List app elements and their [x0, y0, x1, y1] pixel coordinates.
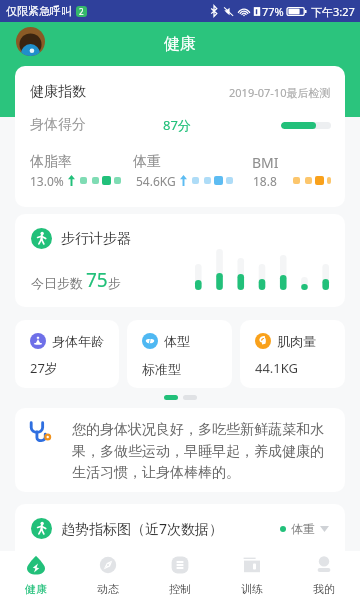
staticText: 77%	[262, 4, 284, 19]
staticText: 体脂率	[30, 153, 72, 171]
staticText: 2019-07-10最后检测	[229, 85, 331, 100]
staticText: 步	[108, 275, 121, 291]
staticText: 体重	[291, 521, 315, 536]
button[interactable]: 训练	[216, 551, 288, 600]
button[interactable]: Profile	[16, 27, 45, 56]
staticText: 健康	[25, 582, 47, 596]
button[interactable]: 健康指数	[15, 66, 345, 207]
staticText: 下午3:27	[311, 4, 355, 19]
button[interactable]: 肌肉量	[240, 320, 345, 388]
staticText: 身体得分	[30, 116, 86, 134]
staticText: 44.1KG	[255, 359, 299, 377]
staticText: 肌肉量	[277, 333, 316, 349]
staticText: 今日步数	[31, 275, 83, 291]
staticText: 训练	[241, 582, 263, 596]
staticText: 趋势指标图（近7次数据）	[61, 519, 224, 538]
staticText: 我的	[313, 582, 335, 596]
button[interactable]: 动态	[72, 551, 144, 600]
staticText: 2	[79, 6, 84, 17]
button[interactable]: 趋势指标图（近7次数据）	[15, 504, 345, 551]
staticText: BMI	[252, 153, 279, 171]
staticText: 54.6KG	[136, 173, 176, 188]
button[interactable]: 身体年龄	[15, 320, 119, 388]
staticText: 您的身体状况良好，多吃些新鲜蔬菜和水果，多做些运动，早睡早起，养成健康的生活习惯…	[72, 421, 330, 481]
staticText: 控制	[169, 582, 191, 596]
staticText: 27岁	[30, 359, 58, 377]
button[interactable]: 体型	[127, 320, 232, 388]
staticText: 18.8	[253, 173, 277, 188]
staticText: 动态	[97, 582, 119, 596]
staticText: 身体年龄	[52, 333, 104, 349]
staticText: 健康	[164, 34, 196, 54]
staticText: 仅限紧急呼叫	[6, 4, 72, 18]
staticText: 体重	[133, 153, 161, 171]
button[interactable]: 健康	[0, 551, 72, 600]
staticText: 标准型	[142, 361, 181, 377]
staticText: 体型	[164, 333, 190, 349]
staticText: 步行计步器	[61, 230, 131, 248]
staticText: 健康指数	[30, 83, 86, 101]
button[interactable]: 您的身体状况良好，多吃些新鲜蔬菜和水果，多做些运动，早睡早起，养成健康的生活习惯…	[15, 408, 345, 492]
button[interactable]: 步行计步器	[15, 214, 345, 307]
button[interactable]: 控制	[144, 551, 216, 600]
staticText: 87分	[163, 116, 191, 134]
staticText: 75	[86, 267, 108, 293]
button[interactable]: 我的	[288, 551, 360, 600]
staticText: 13.0%	[30, 173, 64, 188]
